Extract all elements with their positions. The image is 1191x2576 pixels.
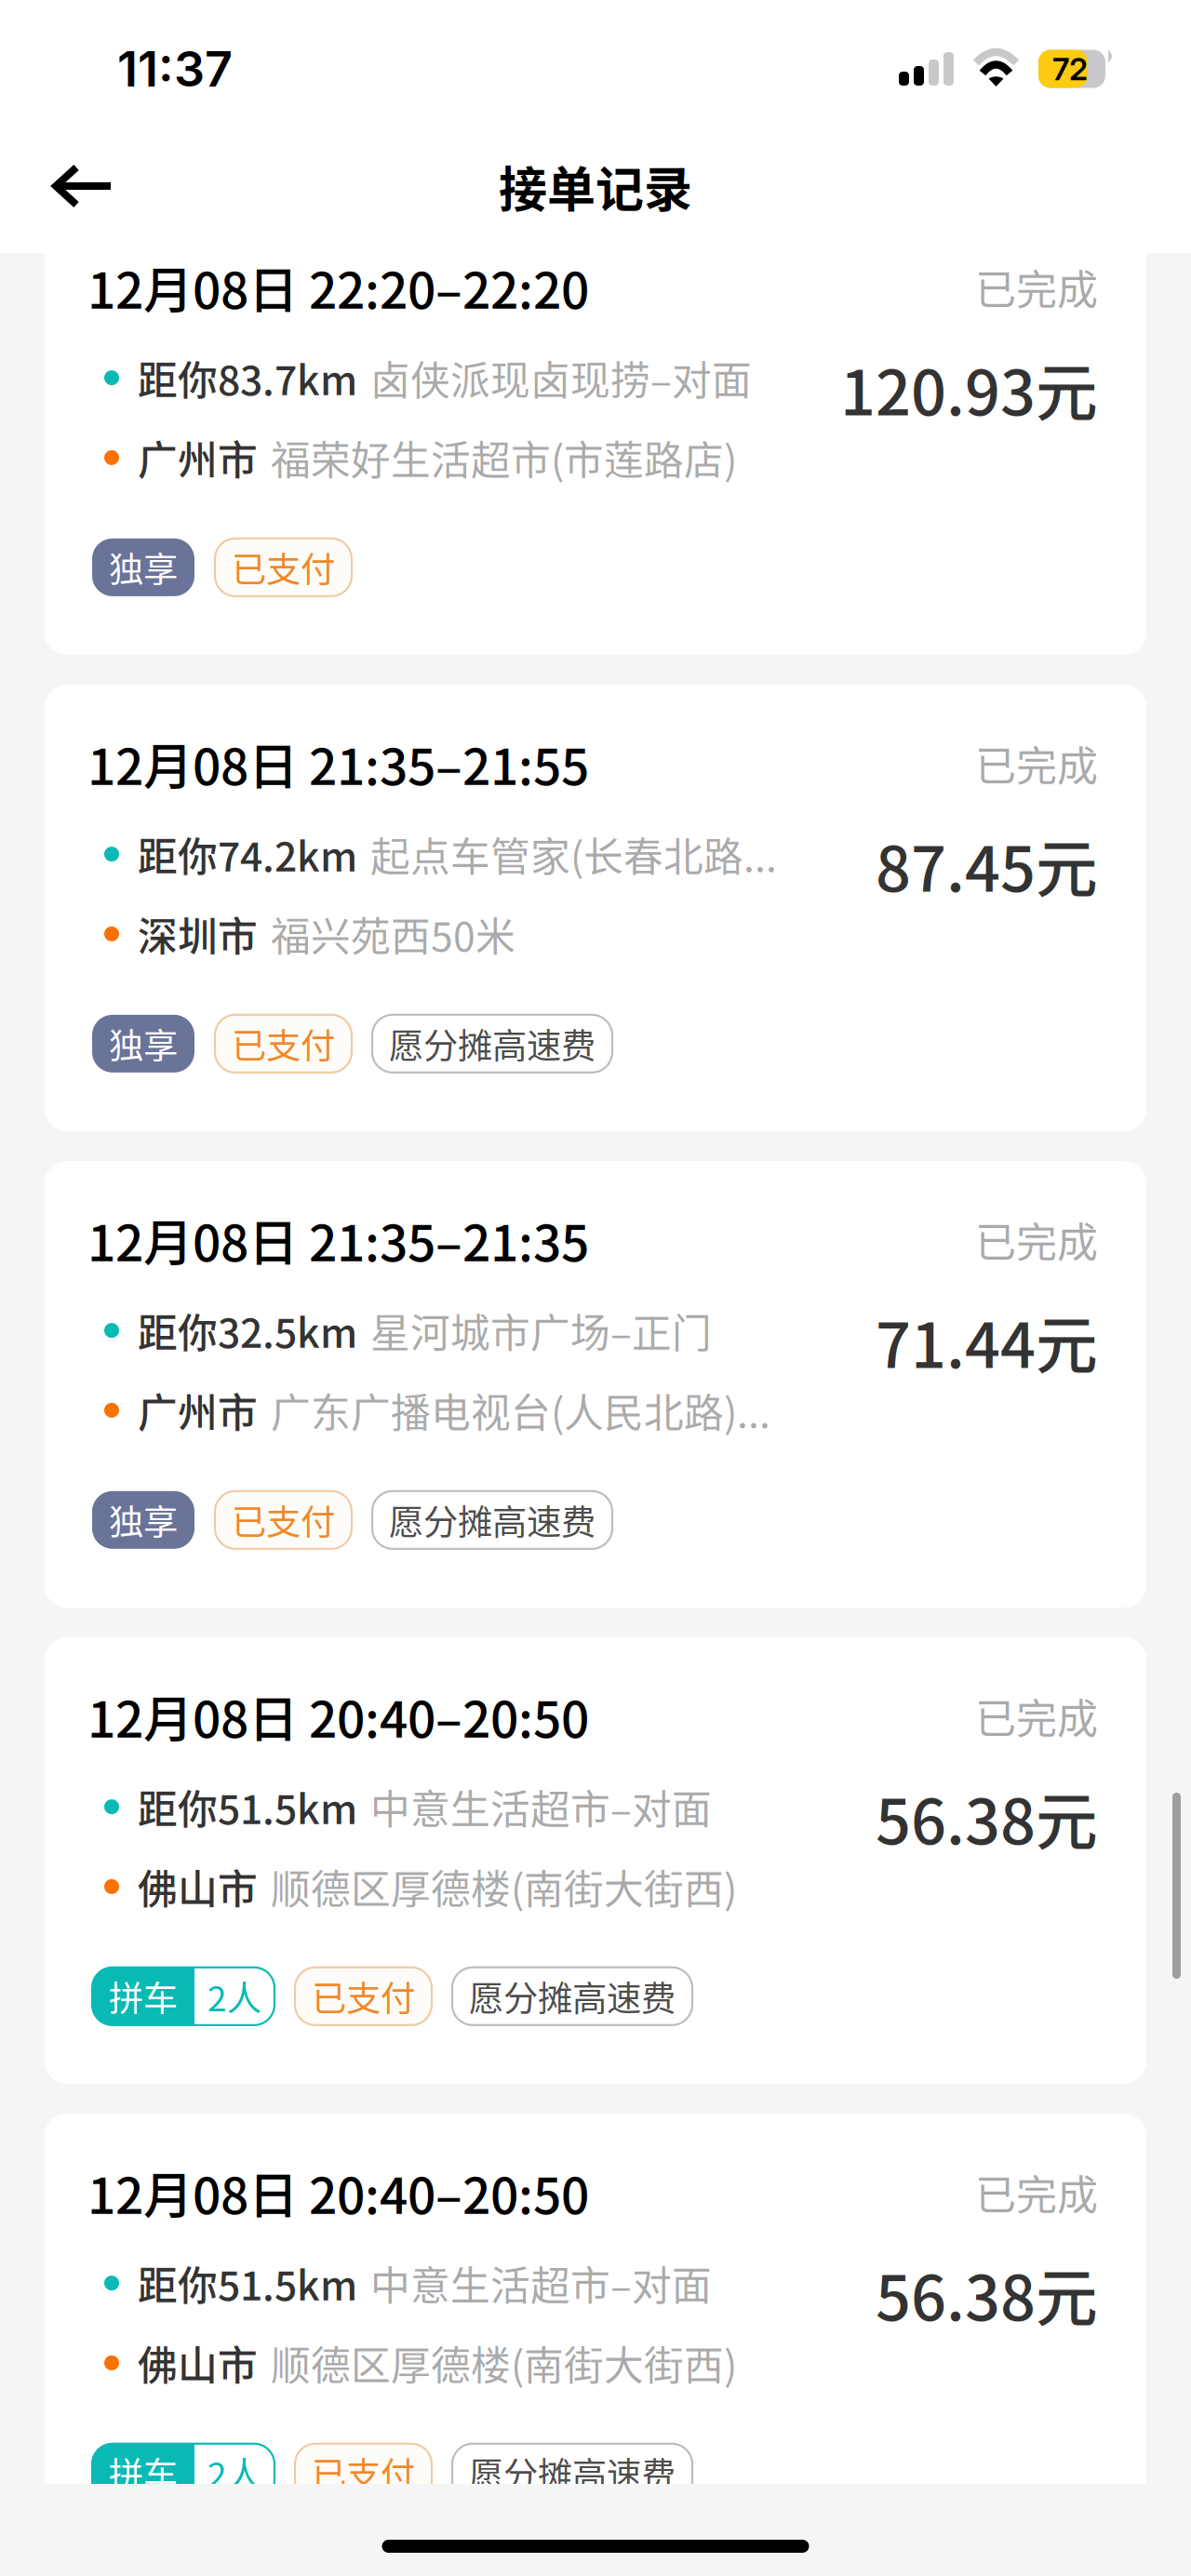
staticText: 卤侠派现卤现捞–对面 [370,349,752,407]
staticText: 独享 [109,1495,178,1545]
staticText: 120.93元 [840,343,1098,433]
staticText: 拼车 [109,2447,178,2498]
staticText: 56.38元 [876,2249,1098,2338]
staticText: 距你32.5km [138,1302,357,1359]
staticText: 87.45元 [876,820,1098,910]
staticText: 中意生活超市–对面 [370,1778,712,1835]
staticText: 71.44元 [876,1296,1098,1386]
staticText: 佛山市 [138,1858,258,1915]
staticText: 距你83.7km [138,349,357,407]
staticText: 拼车 [109,1971,178,2021]
staticText: 独享 [109,1018,178,1069]
staticText: 12月08日 21:35–21:55 [87,727,589,799]
staticText: 福兴苑西50米 [271,905,515,963]
staticText: 广东广播电视台(人民北路)... [271,1381,770,1439]
staticText: 56.38元 [876,1772,1098,1862]
staticText: 福荣好生活超市(市莲路店) [271,429,737,486]
staticText: 11:37 [117,40,233,98]
staticText: 星河城市广场–正门 [370,1302,712,1359]
staticText: 广州市 [138,429,258,486]
button[interactable]: 12月08日 22:20–22:20 [45,208,1146,655]
staticText: 已完成 [975,1210,1098,1269]
staticText: 距你74.2km [138,825,357,883]
staticText: 中意生活超市–对面 [370,2254,712,2312]
staticText: 已支付 [312,1971,415,2021]
staticText: 距你51.5km [138,1778,357,1835]
button[interactable]: 12月08日 20:40–20:50 [45,2114,1146,2560]
staticText: 2人 [207,1971,261,2021]
staticText: 顺德区厚德楼(南街大街西) [271,1858,737,1915]
staticText: 已支付 [232,1495,335,1545]
staticText: 已支付 [312,2447,415,2498]
staticText: 距你51.5km [138,2254,357,2312]
button[interactable]: 12月08日 21:35–21:55 [45,685,1146,1131]
staticText: 深圳市 [138,905,258,963]
staticText: 72 [1052,50,1088,88]
staticText: 12月08日 22:20–22:20 [87,251,589,323]
button[interactable]: 12月08日 20:40–20:50 [45,1637,1146,2084]
staticText: 广州市 [138,1381,258,1439]
button[interactable]: 12月08日 21:35–21:35 [45,1161,1146,1608]
staticText: 愿分摊高速费 [389,1495,595,1545]
staticText: 12月08日 20:40–20:50 [87,2156,589,2228]
staticText: 愿分摊高速费 [389,1018,595,1069]
staticText: 12月08日 21:35–21:35 [87,1204,589,1276]
staticText: 佛山市 [138,2334,258,2392]
staticText: 已完成 [975,2163,1098,2222]
staticText: 已完成 [975,1686,1098,1746]
staticText: 顺德区厚德楼(南街大街西) [271,2334,737,2392]
staticText: 已完成 [975,734,1098,793]
staticText: 已支付 [232,1018,335,1069]
staticText: 起点车管家(长春北路... [370,825,777,883]
staticText: 接单记录 [499,151,692,221]
staticText: 2人 [207,2447,261,2498]
staticText: 已完成 [975,258,1098,317]
staticText: 愿分摊高速费 [469,1971,676,2021]
staticText: 已支付 [232,542,335,593]
staticText: 12月08日 20:40–20:50 [87,1680,589,1752]
staticText: 愿分摊高速费 [469,2447,676,2498]
staticText: 独享 [109,542,178,593]
button[interactable]: 返回 [33,144,135,247]
